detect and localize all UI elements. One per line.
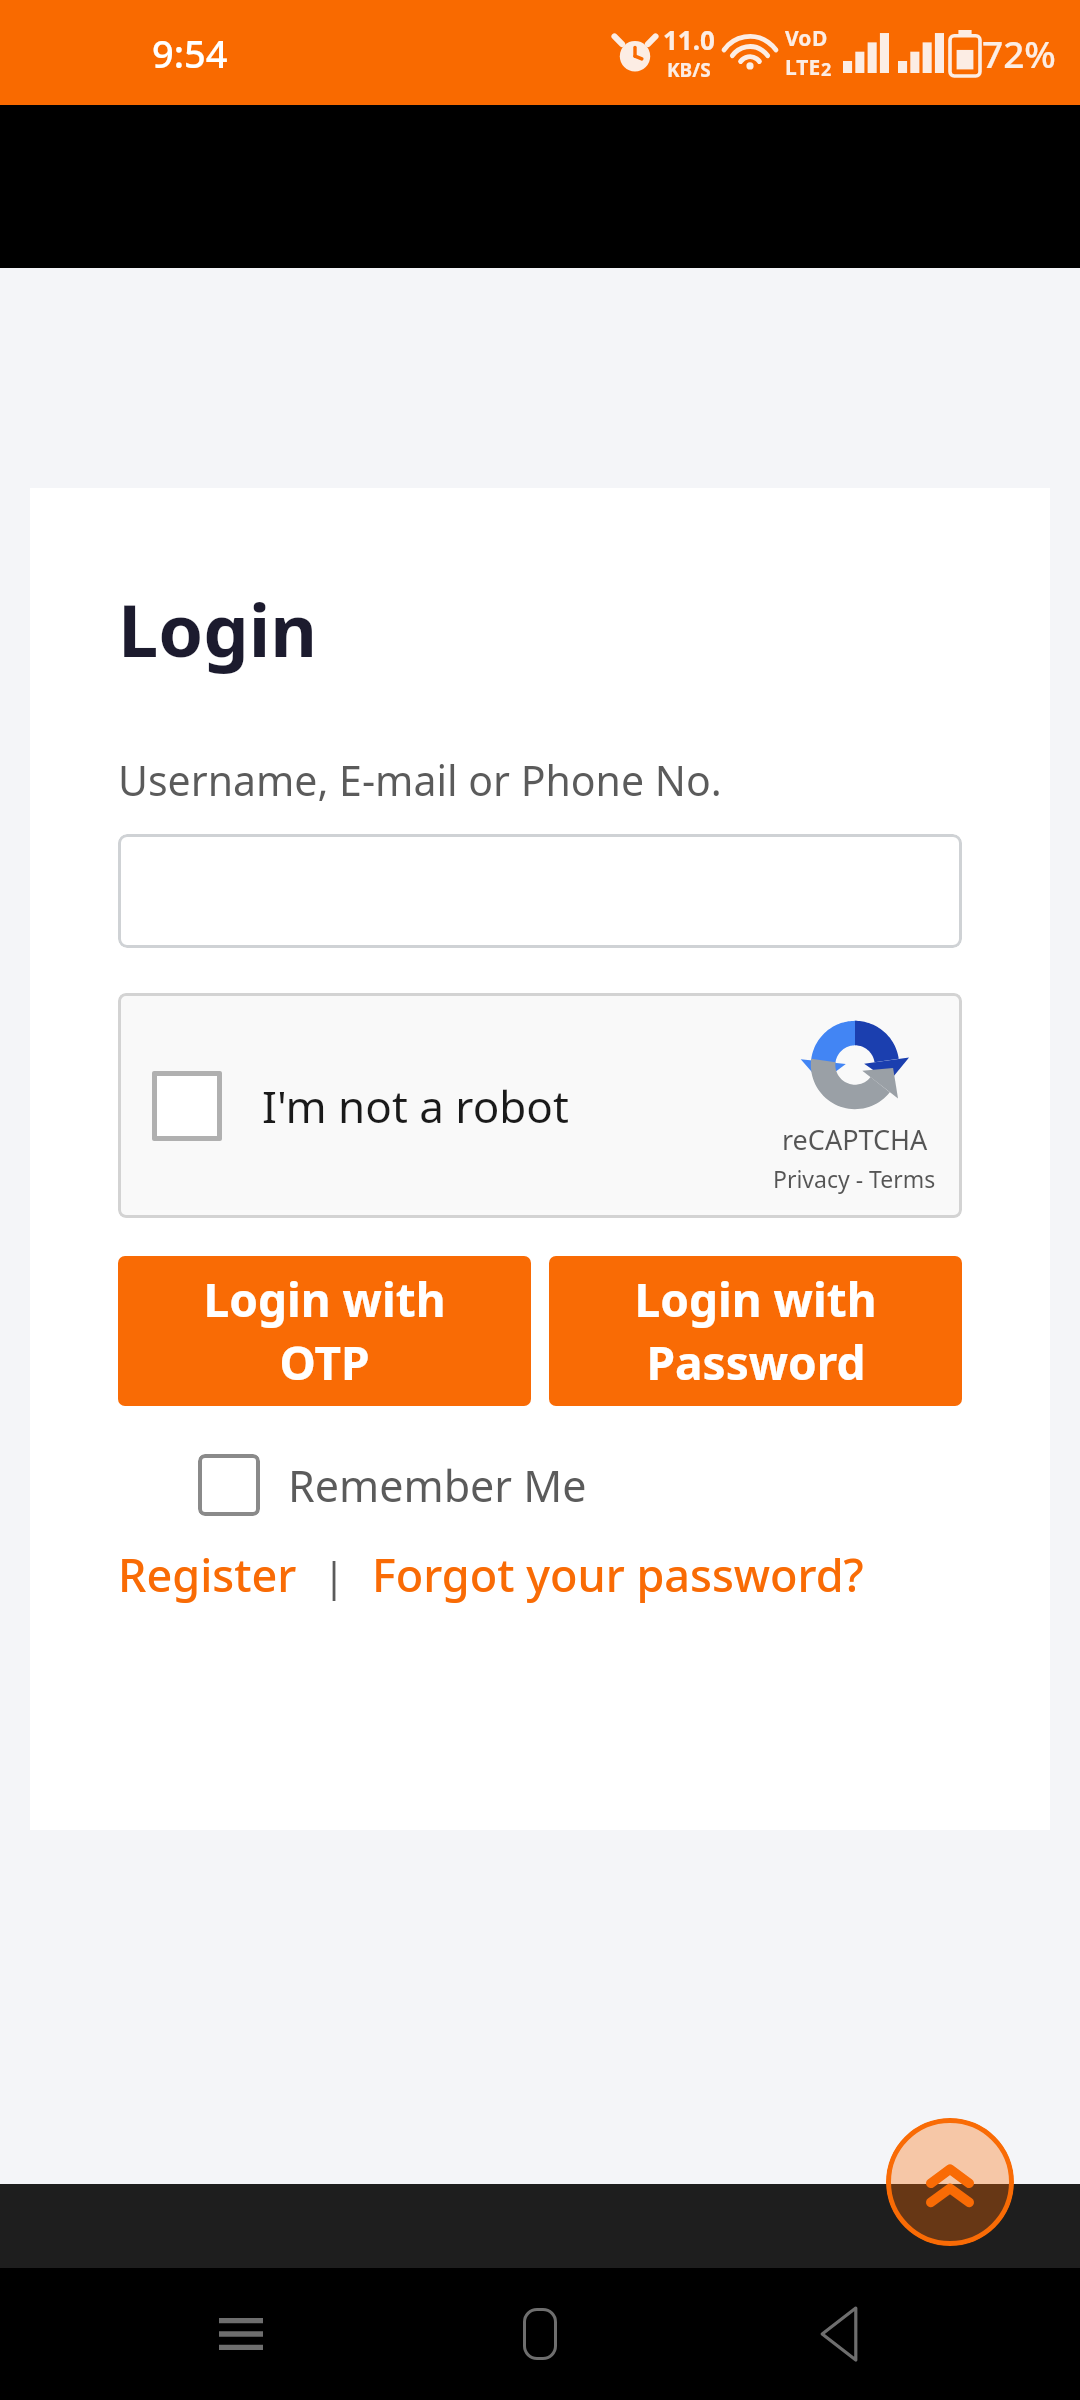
staticText: Register [118, 1544, 297, 1605]
staticText: 9:54 [152, 27, 228, 79]
button[interactable]: Login with [549, 1256, 962, 1406]
staticText: Login with [634, 1268, 877, 1331]
staticText: KB/S [667, 57, 711, 83]
staticText: reCAPTCHA [782, 1121, 928, 1158]
staticText: D [812, 24, 828, 53]
button[interactable]: Home [492, 2286, 588, 2382]
button[interactable]: Scroll to top [886, 2118, 1014, 2246]
button[interactable]: Remember Me [198, 1454, 587, 1516]
staticText: Password [646, 1331, 866, 1394]
staticText: LTE [785, 53, 821, 82]
staticText: 72% [982, 28, 1056, 78]
button[interactable]: Login with [118, 1256, 531, 1406]
staticText: Login [118, 580, 318, 678]
staticText: Privacy - Terms [773, 1163, 936, 1194]
staticText: | [323, 1548, 346, 1602]
staticText: Login with [203, 1268, 446, 1331]
button[interactable]: Back [791, 2286, 887, 2382]
staticText: Remember Me [288, 1456, 587, 1515]
button[interactable]: Register [118, 1544, 297, 1605]
staticText: Vo [785, 24, 812, 53]
button[interactable] [118, 834, 962, 948]
staticText: Username, E-mail or Phone No. [118, 752, 722, 808]
staticText: Forgot your password? [372, 1544, 864, 1605]
button[interactable]: Forgot your password? [372, 1544, 864, 1605]
staticText: I'm not a robot [262, 1076, 569, 1136]
button[interactable]: Recents [193, 2286, 289, 2382]
button[interactable]: I'm not a robot [152, 1071, 569, 1141]
staticText: 11.0 [663, 22, 715, 57]
staticText: OTP [279, 1331, 370, 1394]
staticText: 2 [821, 57, 832, 82]
